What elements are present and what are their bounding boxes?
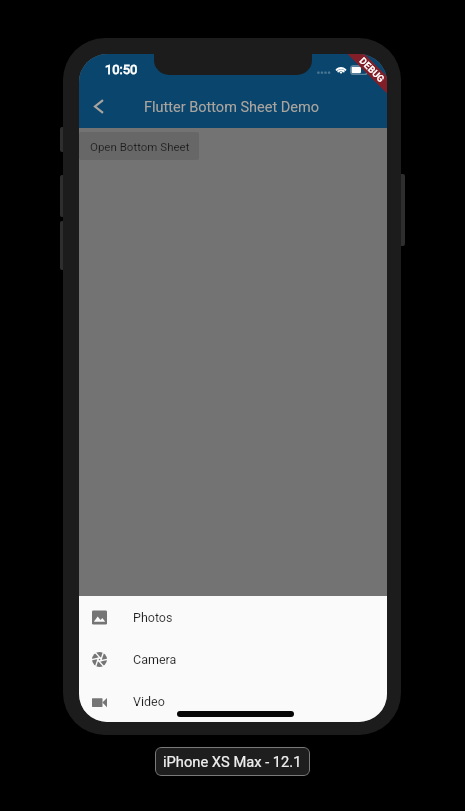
button[interactable]: iPhone XS Max - 12.1: [155, 747, 310, 776]
staticText: Flutter Bottom Sheet Demo: [144, 99, 319, 116]
button[interactable]: Back: [81, 88, 117, 124]
staticText: Video: [133, 694, 165, 709]
staticText: Open Bottom Sheet: [90, 140, 190, 153]
button[interactable]: Photos: [79, 596, 387, 638]
button[interactable]: Open Bottom Sheet: [79, 132, 199, 160]
staticText: Photos: [133, 610, 173, 625]
staticText: 10:50: [105, 62, 138, 77]
button[interactable]: Camera: [79, 638, 387, 680]
button[interactable]: Video: [79, 680, 387, 722]
staticText: iPhone XS Max - 12.1: [163, 753, 302, 770]
staticText: Camera: [133, 652, 177, 667]
staticText: DEBUG: [357, 56, 387, 85]
